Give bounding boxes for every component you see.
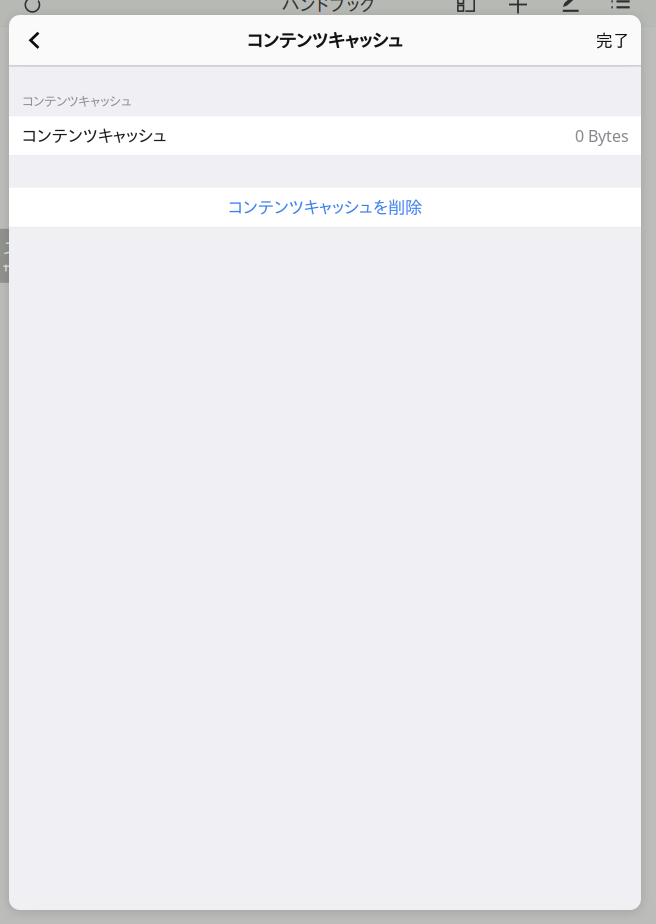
button[interactable]: リスト xyxy=(611,0,630,11)
button[interactable]: コンテンツキャッシュ xyxy=(9,116,641,155)
button[interactable]: 追加 xyxy=(509,0,527,13)
staticText: ハンドブック xyxy=(281,0,374,14)
staticText: コンテンツキャッシュ xyxy=(22,94,131,108)
button[interactable]: 戻る xyxy=(9,15,60,66)
button[interactable]: レイアウト xyxy=(457,0,475,12)
staticText: 完了 xyxy=(595,32,629,49)
button[interactable]: コンテンツキャッシュを削除 xyxy=(9,187,641,227)
staticText: コンテンツキャッシュ xyxy=(247,31,403,50)
staticText: 0 Bytes xyxy=(575,125,629,146)
staticText: コンテンツキャッシュを削除 xyxy=(228,199,422,216)
button[interactable]: 完了 xyxy=(584,15,641,66)
button[interactable]: マークアップ xyxy=(562,0,579,13)
staticText: コンテンツキャッシュ xyxy=(22,127,167,144)
button[interactable]: 再読み込み xyxy=(24,0,40,12)
